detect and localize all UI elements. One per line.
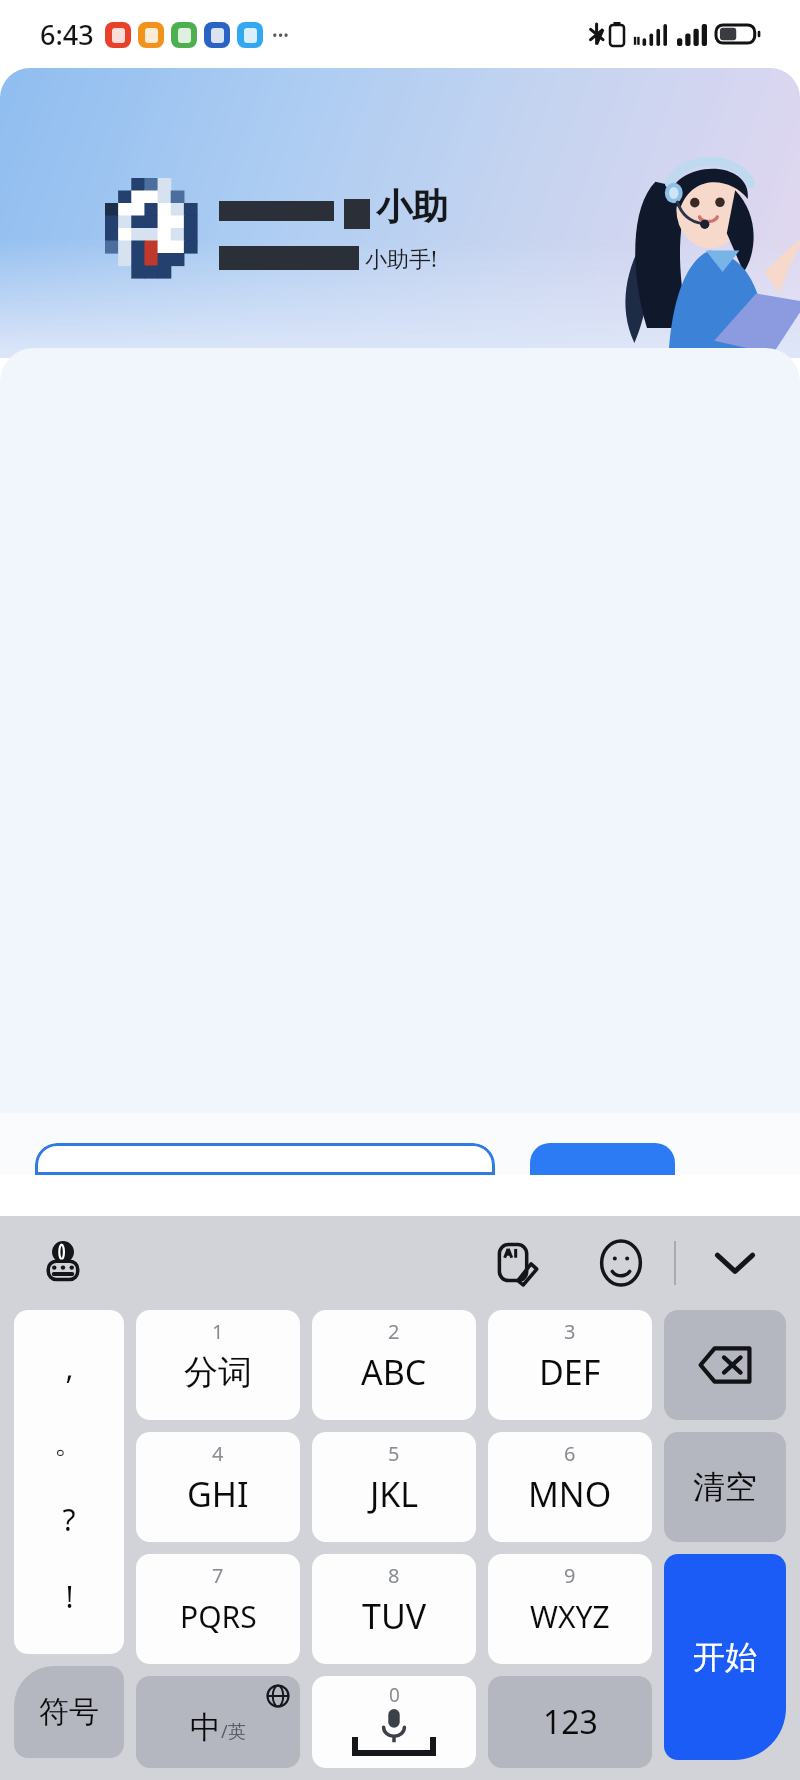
staticText: DEF	[539, 1349, 601, 1395]
staticText: 8	[388, 1562, 400, 1589]
staticText: 6:43	[40, 16, 94, 53]
staticText: TUV	[362, 1593, 427, 1639]
button[interactable]: Backspace	[664, 1310, 786, 1420]
staticText: 符号	[39, 1693, 99, 1731]
button[interactable]: AI writing	[484, 1230, 550, 1296]
staticText: 2	[388, 1318, 400, 1345]
staticText: !	[65, 1576, 74, 1617]
button[interactable]: 3	[488, 1310, 652, 1420]
staticText: 分词	[184, 1351, 252, 1394]
staticText: 3	[564, 1318, 576, 1345]
staticText: 0	[389, 1682, 400, 1708]
button[interactable]: 清空	[664, 1432, 786, 1542]
staticText: 5	[388, 1440, 400, 1467]
staticText: 开始	[693, 1637, 757, 1677]
button[interactable]: 中	[136, 1676, 300, 1768]
staticText: 4	[212, 1440, 224, 1467]
button[interactable]: 123	[488, 1676, 652, 1768]
staticText: ABC	[361, 1349, 427, 1395]
staticText: 7	[212, 1562, 224, 1589]
staticText: 小助手!	[365, 243, 437, 273]
staticText: /英	[221, 1719, 246, 1744]
button[interactable]: 开始	[664, 1554, 786, 1760]
button[interactable]: Space and voice input	[312, 1676, 476, 1768]
button[interactable]: 7	[136, 1554, 300, 1664]
staticText: WXYZ	[530, 1596, 610, 1637]
button[interactable]: 符号	[14, 1666, 124, 1758]
staticText: •••	[272, 25, 289, 45]
button[interactable]	[35, 1143, 495, 1175]
button[interactable]: 9	[488, 1554, 652, 1664]
button[interactable]: 6	[488, 1432, 652, 1542]
button[interactable]: 4	[136, 1432, 300, 1542]
staticText: 1	[212, 1318, 224, 1345]
staticText: 6	[564, 1440, 576, 1467]
staticText: 小助	[376, 184, 448, 229]
staticText: PQRS	[180, 1596, 257, 1637]
staticText: 清空	[693, 1467, 757, 1507]
staticText: MNO	[528, 1471, 612, 1517]
staticText: 。	[54, 1424, 84, 1462]
staticText: GHI	[187, 1471, 249, 1517]
button[interactable]: 5	[312, 1432, 476, 1542]
button[interactable]: Emoji	[588, 1230, 654, 1296]
staticText: JKL	[370, 1471, 419, 1517]
button[interactable]	[530, 1143, 675, 1175]
staticText: ,	[65, 1347, 74, 1388]
staticText: 9	[564, 1562, 576, 1589]
button[interactable]: 1	[136, 1310, 300, 1420]
button[interactable]: 8	[312, 1554, 476, 1664]
button[interactable]: 2	[312, 1310, 476, 1420]
staticText: 中	[190, 1708, 221, 1747]
button[interactable]: ,	[14, 1310, 124, 1654]
staticText: ?	[62, 1499, 76, 1540]
button[interactable]: Input method	[32, 1232, 94, 1294]
button[interactable]: Hide keyboard	[702, 1230, 768, 1296]
staticText: 123	[543, 1700, 598, 1744]
